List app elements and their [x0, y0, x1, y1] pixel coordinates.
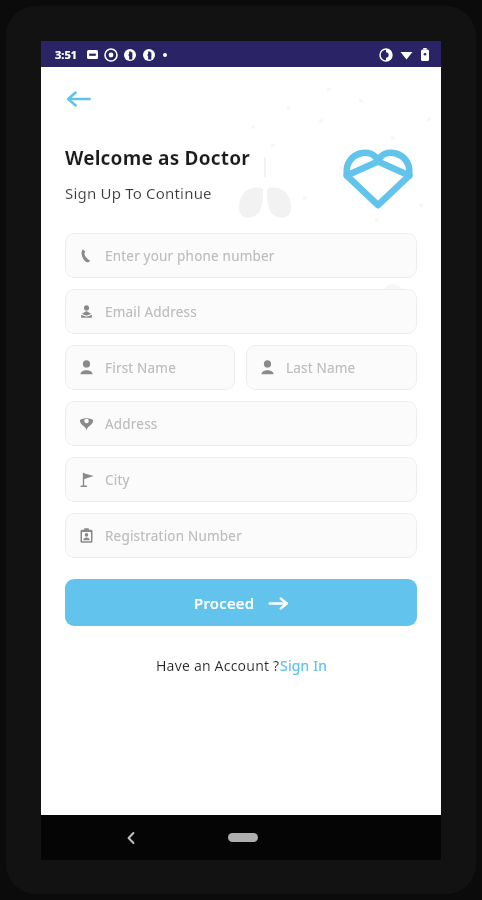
staticText: Proceed [194, 593, 255, 613]
button[interactable]: Back [121, 828, 141, 848]
staticText: Last Name [286, 359, 356, 377]
button[interactable]: Email Address [65, 289, 417, 334]
staticText: Enter your phone number [105, 247, 275, 265]
button[interactable]: City [65, 457, 417, 502]
button[interactable]: Enter your phone number [65, 233, 417, 278]
button[interactable]: Proceed [65, 579, 417, 626]
button[interactable]: Registration Number [65, 513, 417, 558]
staticText: 3:51 [55, 47, 77, 62]
button[interactable]: Address [65, 401, 417, 446]
staticText: City [105, 471, 130, 489]
staticText: First Name [105, 359, 176, 377]
staticText: Welcome as Doctor [65, 145, 250, 171]
staticText: Sign In [280, 656, 327, 675]
staticText: Address [105, 415, 158, 433]
staticText: Sign Up To Continue [65, 183, 212, 203]
button[interactable]: Back [59, 79, 99, 119]
button[interactable]: First Name [65, 345, 235, 390]
button[interactable]: Last Name [246, 345, 417, 390]
staticText: Email Address [105, 303, 197, 321]
staticText: Registration Number [105, 527, 242, 545]
button[interactable]: Home [228, 833, 258, 842]
staticText: Have an Account ? [156, 656, 280, 675]
button[interactable]: Sign In [280, 656, 327, 675]
